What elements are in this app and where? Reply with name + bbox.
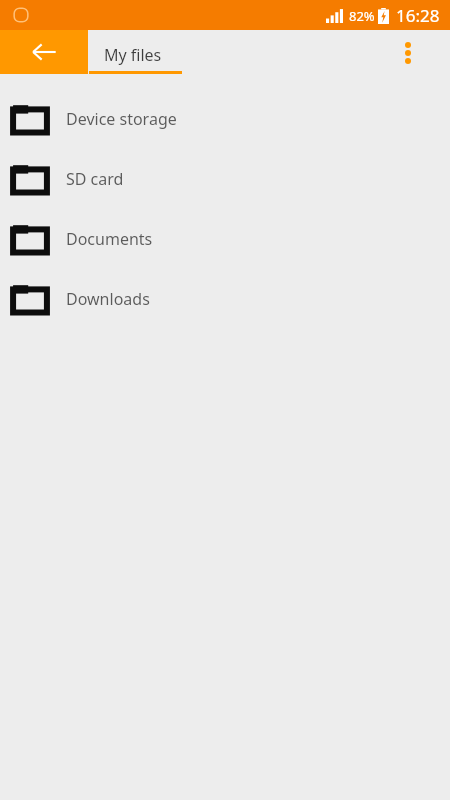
button[interactable]: My files xyxy=(89,30,182,76)
staticText: My files xyxy=(104,44,162,66)
staticText: SD card xyxy=(66,168,124,190)
staticText: Downloads xyxy=(66,288,150,310)
button[interactable]: SD card xyxy=(0,149,450,209)
staticText: 82% xyxy=(349,7,375,25)
staticText: Device storage xyxy=(66,108,177,130)
staticText: 16:28 xyxy=(396,4,440,27)
button[interactable]: Downloads xyxy=(0,269,450,329)
button[interactable]: Back xyxy=(0,30,88,74)
staticText: Documents xyxy=(66,228,153,250)
button[interactable]: More options xyxy=(386,30,430,76)
button[interactable]: Documents xyxy=(0,209,450,269)
button[interactable]: Device storage xyxy=(0,89,450,149)
